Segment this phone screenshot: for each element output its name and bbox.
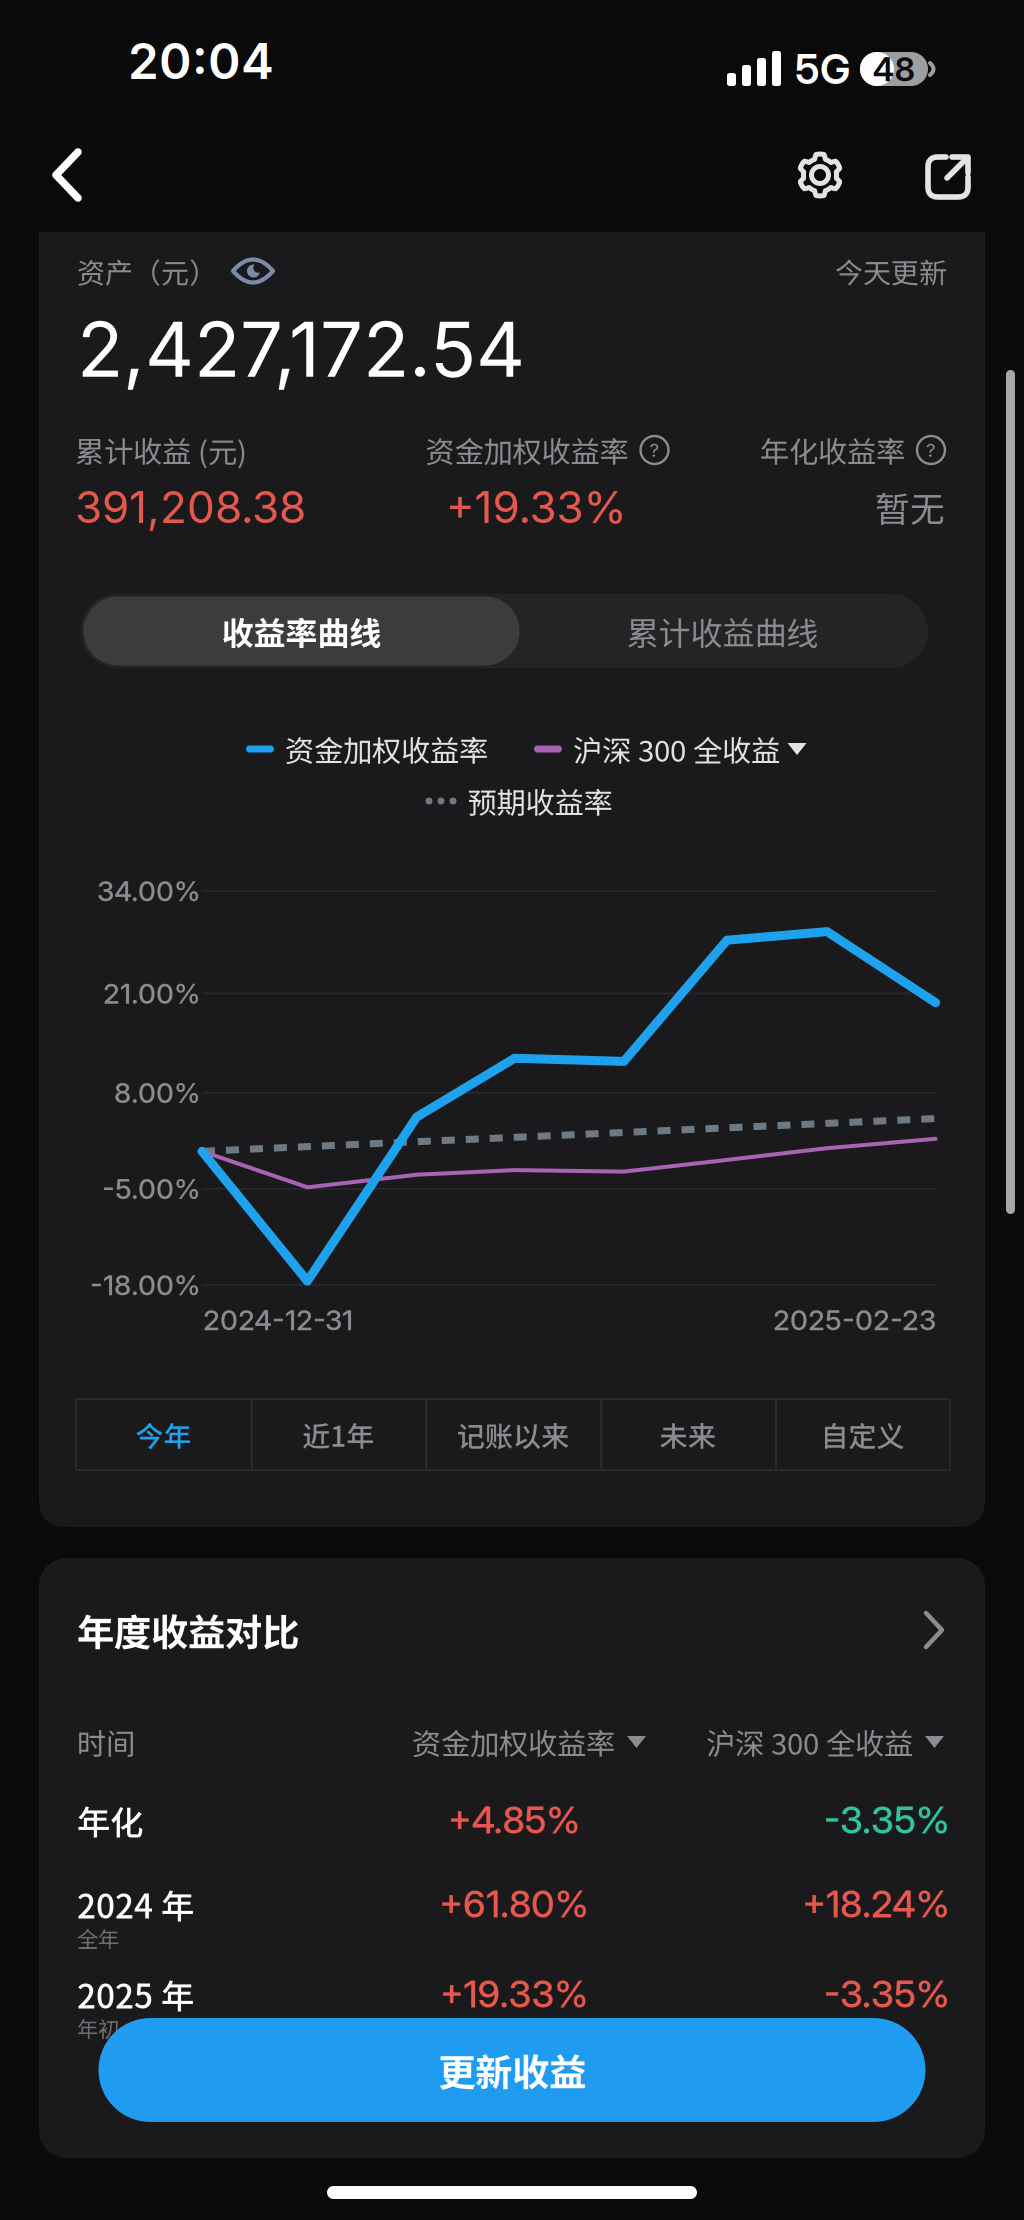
staticText: 资金加权收益率 xyxy=(425,429,628,471)
staticText: +18.24% xyxy=(802,1881,950,1927)
staticText: -5.00% xyxy=(102,1172,201,1206)
staticText: 更新收益 xyxy=(438,2043,586,2097)
button[interactable]: Change benchmark xyxy=(780,732,814,766)
staticText: 未来 xyxy=(660,1414,716,1455)
button[interactable]: 自定义 xyxy=(775,1399,950,1470)
staticText: 2025-02-23 xyxy=(773,1303,936,1337)
staticText: 391,208.38 xyxy=(75,480,306,534)
button[interactable]: 今年 xyxy=(76,1399,251,1470)
staticText: +61.80% xyxy=(439,1881,589,1927)
staticText: 累计收益曲线 xyxy=(626,608,818,654)
staticText: 收益率曲线 xyxy=(221,608,381,654)
staticText: 8.00% xyxy=(114,1076,201,1110)
staticText: 年度收益对比 xyxy=(77,1603,299,1657)
staticText: 年化收益率 xyxy=(760,429,905,471)
staticText: 20:04 xyxy=(128,31,274,91)
staticText: 21.00% xyxy=(103,977,201,1010)
staticText: -3.35% xyxy=(824,1797,950,1843)
staticText: 资产（元） xyxy=(77,251,217,291)
button[interactable]: 近1年 xyxy=(251,1399,426,1470)
button[interactable]: 更新收益 xyxy=(98,2018,925,2122)
button[interactable]: Share xyxy=(900,127,996,227)
staticText: 48 xyxy=(872,49,915,89)
button[interactable]: Toggle balance visibility xyxy=(217,251,289,291)
button[interactable]: 未来 xyxy=(600,1399,775,1470)
staticText: 时间 xyxy=(77,1721,135,1763)
staticText: +19.33% xyxy=(439,1971,588,2017)
staticText: 2024 年 xyxy=(77,1880,194,1928)
button[interactable]: 记账以来 xyxy=(426,1399,600,1470)
staticText: 2024-12-31 xyxy=(203,1303,353,1337)
staticText: 暂无 xyxy=(875,482,945,532)
staticText: 自定义 xyxy=(821,1414,905,1455)
button[interactable]: Back xyxy=(19,125,115,225)
staticText: 资金加权收益率 xyxy=(285,728,488,770)
staticText: 年化 xyxy=(77,1796,143,1844)
button[interactable]: 沪深 300 全收益 xyxy=(674,1722,944,1762)
button[interactable]: 年度收益对比 xyxy=(77,1582,947,1678)
button[interactable]: 资金加权收益率 xyxy=(386,1722,646,1762)
button[interactable]: Settings xyxy=(772,125,868,225)
staticText: 2025 年 xyxy=(77,1970,194,2018)
staticText: 2,427,172.54 xyxy=(77,303,525,395)
staticText: 累计收益 (元) xyxy=(75,429,247,471)
staticText: 近1年 xyxy=(302,1414,374,1455)
staticText: +19.33% xyxy=(445,480,626,534)
button[interactable]: 累计收益曲线 xyxy=(519,596,925,665)
staticText: 5G xyxy=(795,44,850,94)
staticText: 今天更新 xyxy=(835,251,947,291)
staticText: 沪深 300 全收益 xyxy=(706,1721,913,1763)
button[interactable]: 收益率曲线 xyxy=(83,596,519,665)
staticText: 记账以来 xyxy=(457,1414,569,1455)
staticText: -3.35% xyxy=(824,1971,950,2017)
staticText: 年初 xyxy=(77,2013,119,2043)
staticText: 34.00% xyxy=(97,874,201,908)
staticText: 沪深 300 全收益 xyxy=(573,728,780,770)
staticText: ? xyxy=(926,439,936,461)
staticText: -18.00% xyxy=(90,1268,201,1302)
staticText: 今年 xyxy=(135,1414,191,1455)
staticText: ? xyxy=(649,439,659,461)
staticText: +4.85% xyxy=(447,1797,580,1843)
staticText: 资金加权收益率 xyxy=(412,1721,615,1763)
staticText: 全年 xyxy=(77,1923,119,1953)
staticText: 预期收益率 xyxy=(467,780,612,822)
